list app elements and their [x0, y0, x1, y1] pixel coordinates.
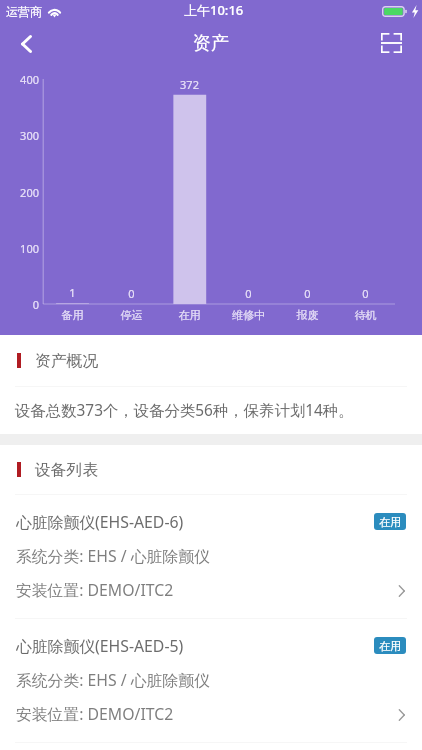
- staticText: 安装位置: DEMO/ITC2: [16, 579, 174, 600]
- staticText: 设备列表: [35, 460, 99, 480]
- staticText: 系统分类: EHS / 心脏除颤仪: [16, 545, 210, 566]
- button[interactable]: 心脏除颤仪(EHS-AED-6): [0, 495, 422, 618]
- staticText: 0: [4, 297, 39, 312]
- staticText: 设备总数373个，设备分类56种，保养计划14种。: [15, 400, 354, 421]
- staticText: 维修中: [219, 308, 278, 322]
- staticText: 在用: [160, 308, 219, 322]
- staticText: 0: [278, 286, 337, 301]
- staticText: 心脏除颤仪(EHS-AED-5): [16, 635, 184, 656]
- staticText: 0: [219, 286, 278, 301]
- staticText: 运营商: [6, 4, 42, 19]
- staticText: 待机: [336, 308, 395, 322]
- staticText: 心脏除颤仪(EHS-AED-6): [16, 511, 184, 532]
- button[interactable]: 心脏除颤仪(EHS-AED-5): [0, 619, 422, 742]
- staticText: 372: [160, 77, 219, 92]
- staticText: 300: [4, 128, 39, 143]
- staticText: 资产概况: [35, 351, 99, 371]
- staticText: 0: [102, 286, 161, 301]
- staticText: 400: [4, 72, 39, 87]
- staticText: 资产: [193, 32, 229, 55]
- staticText: 上午10:16: [184, 1, 244, 19]
- button[interactable]: 扫一扫: [365, 21, 417, 65]
- staticText: 停运: [102, 308, 161, 322]
- staticText: 报废: [278, 308, 337, 322]
- staticText: 100: [4, 241, 39, 256]
- staticText: 安装位置: DEMO/ITC2: [16, 703, 174, 724]
- staticText: 0: [336, 286, 395, 301]
- staticText: 1: [43, 285, 102, 300]
- staticText: 200: [4, 185, 39, 200]
- staticText: 备用: [43, 308, 102, 322]
- staticText: 系统分类: EHS / 心脏除颤仪: [16, 669, 210, 690]
- staticText: 在用: [379, 515, 401, 529]
- button[interactable]: 返回: [0, 22, 52, 66]
- staticText: 在用: [379, 639, 401, 653]
